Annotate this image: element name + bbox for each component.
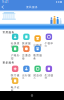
button[interactable]: 社保查询 (9, 34, 21, 46)
button[interactable]: Back (0, 4, 5, 10)
staticText: 社保查询 (11, 42, 20, 48)
button[interactable]: 出行服务 (21, 66, 32, 78)
staticText: 医疗健康 (11, 74, 20, 80)
staticText: 9:41 (2, 0, 9, 4)
button[interactable]: 个税申报 (43, 34, 54, 46)
staticText: 更多服务 (2, 61, 14, 64)
button[interactable]: 公积金 (32, 34, 43, 46)
staticText: 医保服务 (22, 42, 31, 48)
staticText: 个税申报 (44, 42, 53, 48)
staticText: 就业创业 (33, 74, 42, 80)
staticText: 常用服务 (2, 31, 14, 34)
staticText: 公积金 (33, 43, 42, 47)
staticText: 生活缴费 (44, 74, 53, 80)
button[interactable]: 就业创业 (32, 66, 43, 78)
staticText: 电子证照 (11, 86, 20, 92)
button[interactable]: 交通违章 (21, 46, 32, 58)
button[interactable]: 医疗健康 (9, 66, 21, 78)
staticText: 便民服务 (26, 5, 38, 9)
staticText: 户籍办理 (11, 54, 20, 60)
button[interactable]: 教育服务 (32, 46, 43, 58)
button[interactable]: 电子证照 (9, 78, 21, 90)
button[interactable]: 医保服务 (21, 34, 32, 46)
button[interactable]: 生活缴费 (43, 66, 54, 78)
staticText: 交通违章 (22, 54, 31, 60)
staticText: 出行服务 (22, 74, 31, 80)
staticText: 教育服务 (33, 54, 42, 60)
button[interactable]: 户籍办理 (9, 46, 21, 58)
